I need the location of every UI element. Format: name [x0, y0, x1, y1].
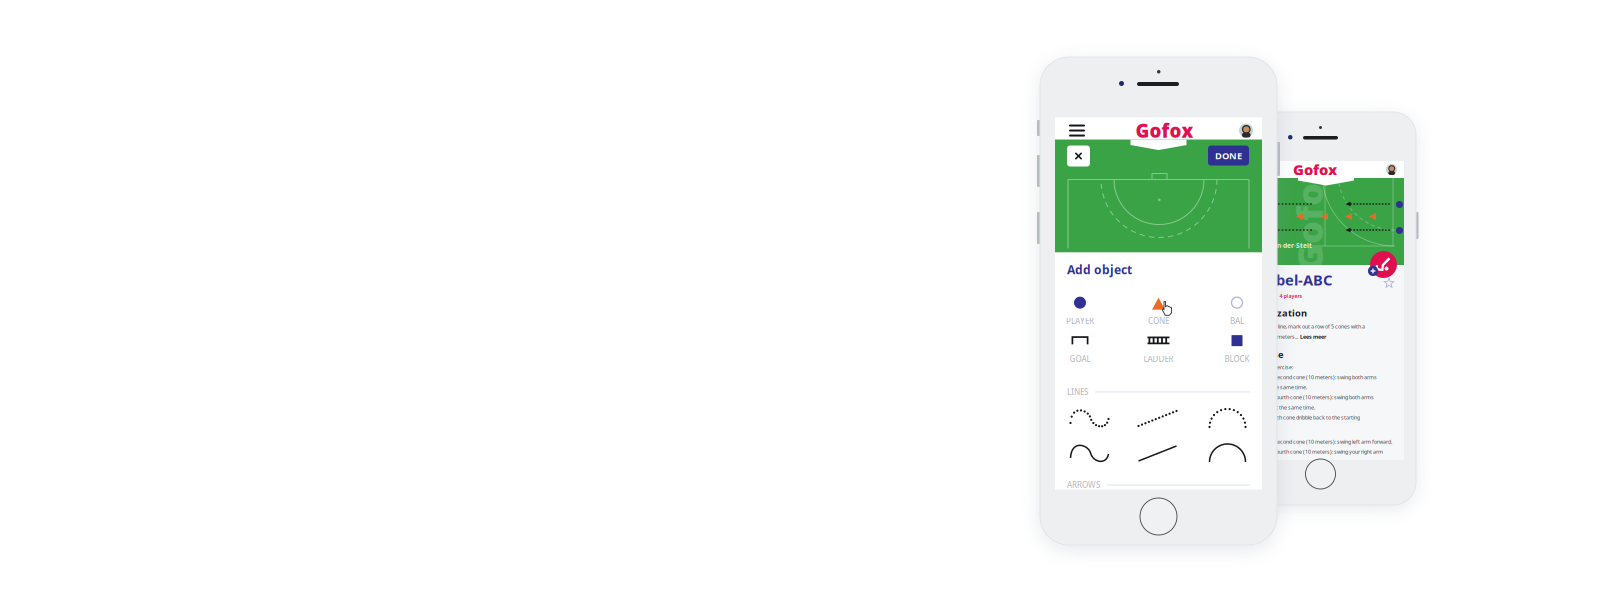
staticText: BLOCK: [1224, 354, 1249, 364]
button[interactable]: LADDER: [1133, 329, 1183, 367]
button[interactable]: Profile: [1239, 123, 1253, 137]
staticText: Organization: [1245, 307, 1307, 319]
staticText: Once at the second cone (10 meters): swi…: [1245, 438, 1392, 445]
staticText: PLAYER: [1066, 316, 1094, 326]
staticText: point.: [1245, 424, 1258, 431]
staticText: From the end line, mark out a row of 5 c…: [1245, 323, 1365, 330]
button[interactable]: Close: [1067, 145, 1090, 166]
staticText: 4 players: [1279, 292, 1302, 300]
button[interactable]: GOAL: [1055, 329, 1105, 367]
staticText: forward.: [1245, 458, 1265, 465]
button[interactable]: Line: [1124, 401, 1193, 436]
staticText: Once at the fourth cone (10 meters): swi…: [1245, 394, 1374, 401]
staticText: n der Stelt: [1277, 241, 1312, 250]
staticText: distance of 5 meters...: [1245, 333, 1298, 340]
staticText: Finish the exercise by dribbling around …: [1245, 471, 1380, 478]
button[interactable]: Menu: [1064, 118, 1090, 142]
button[interactable]: DONE: [1208, 145, 1249, 165]
button[interactable]: CONE: [1133, 291, 1183, 329]
staticText: Lees meer: [1300, 333, 1326, 340]
staticText: backwards at the same time.: [1245, 404, 1315, 411]
staticText: Dribbel-ABC: [1245, 270, 1332, 289]
staticText: LINES: [1067, 387, 1088, 397]
button[interactable]: Add drill: [1370, 251, 1397, 278]
button[interactable]: Line: [1193, 401, 1262, 436]
staticText: DONE: [1215, 149, 1242, 162]
button[interactable]: Favourite: [1380, 274, 1398, 292]
staticText: GOAL: [1069, 354, 1090, 364]
staticText: Part of the exercise:: [1245, 363, 1293, 371]
staticText: ARROWS: [1067, 480, 1100, 490]
staticText: forward at the same time.: [1245, 384, 1307, 391]
staticText: Gofox: [1293, 160, 1337, 179]
staticText: Once at the second cone (10 meters): swi…: [1245, 374, 1377, 381]
staticText: After the fourth cone dribble back to th…: [1245, 414, 1360, 421]
staticText: LADDER: [1143, 354, 1173, 364]
staticText: CONE: [1148, 316, 1169, 326]
staticText: Add object: [1067, 261, 1132, 277]
staticText: BAL: [1230, 316, 1244, 326]
staticText: Gofox: [1254, 192, 1364, 240]
button[interactable]: Line: [1055, 436, 1124, 471]
staticText: Exercise: [1245, 348, 1284, 360]
staticText: Gofox: [1135, 118, 1193, 143]
staticText: Techniek: [1245, 292, 1268, 300]
button[interactable]: Line: [1124, 436, 1193, 471]
button[interactable]: Line: [1055, 401, 1124, 436]
staticText: Once at the fourth cone (10 meters): swi…: [1245, 448, 1383, 455]
button[interactable]: PLAYER: [1055, 291, 1105, 329]
button[interactable]: BAL: [1212, 291, 1262, 329]
button[interactable]: Add: [1368, 266, 1378, 276]
button[interactable]: BLOCK: [1212, 329, 1262, 367]
button[interactable]: Line: [1193, 436, 1262, 471]
